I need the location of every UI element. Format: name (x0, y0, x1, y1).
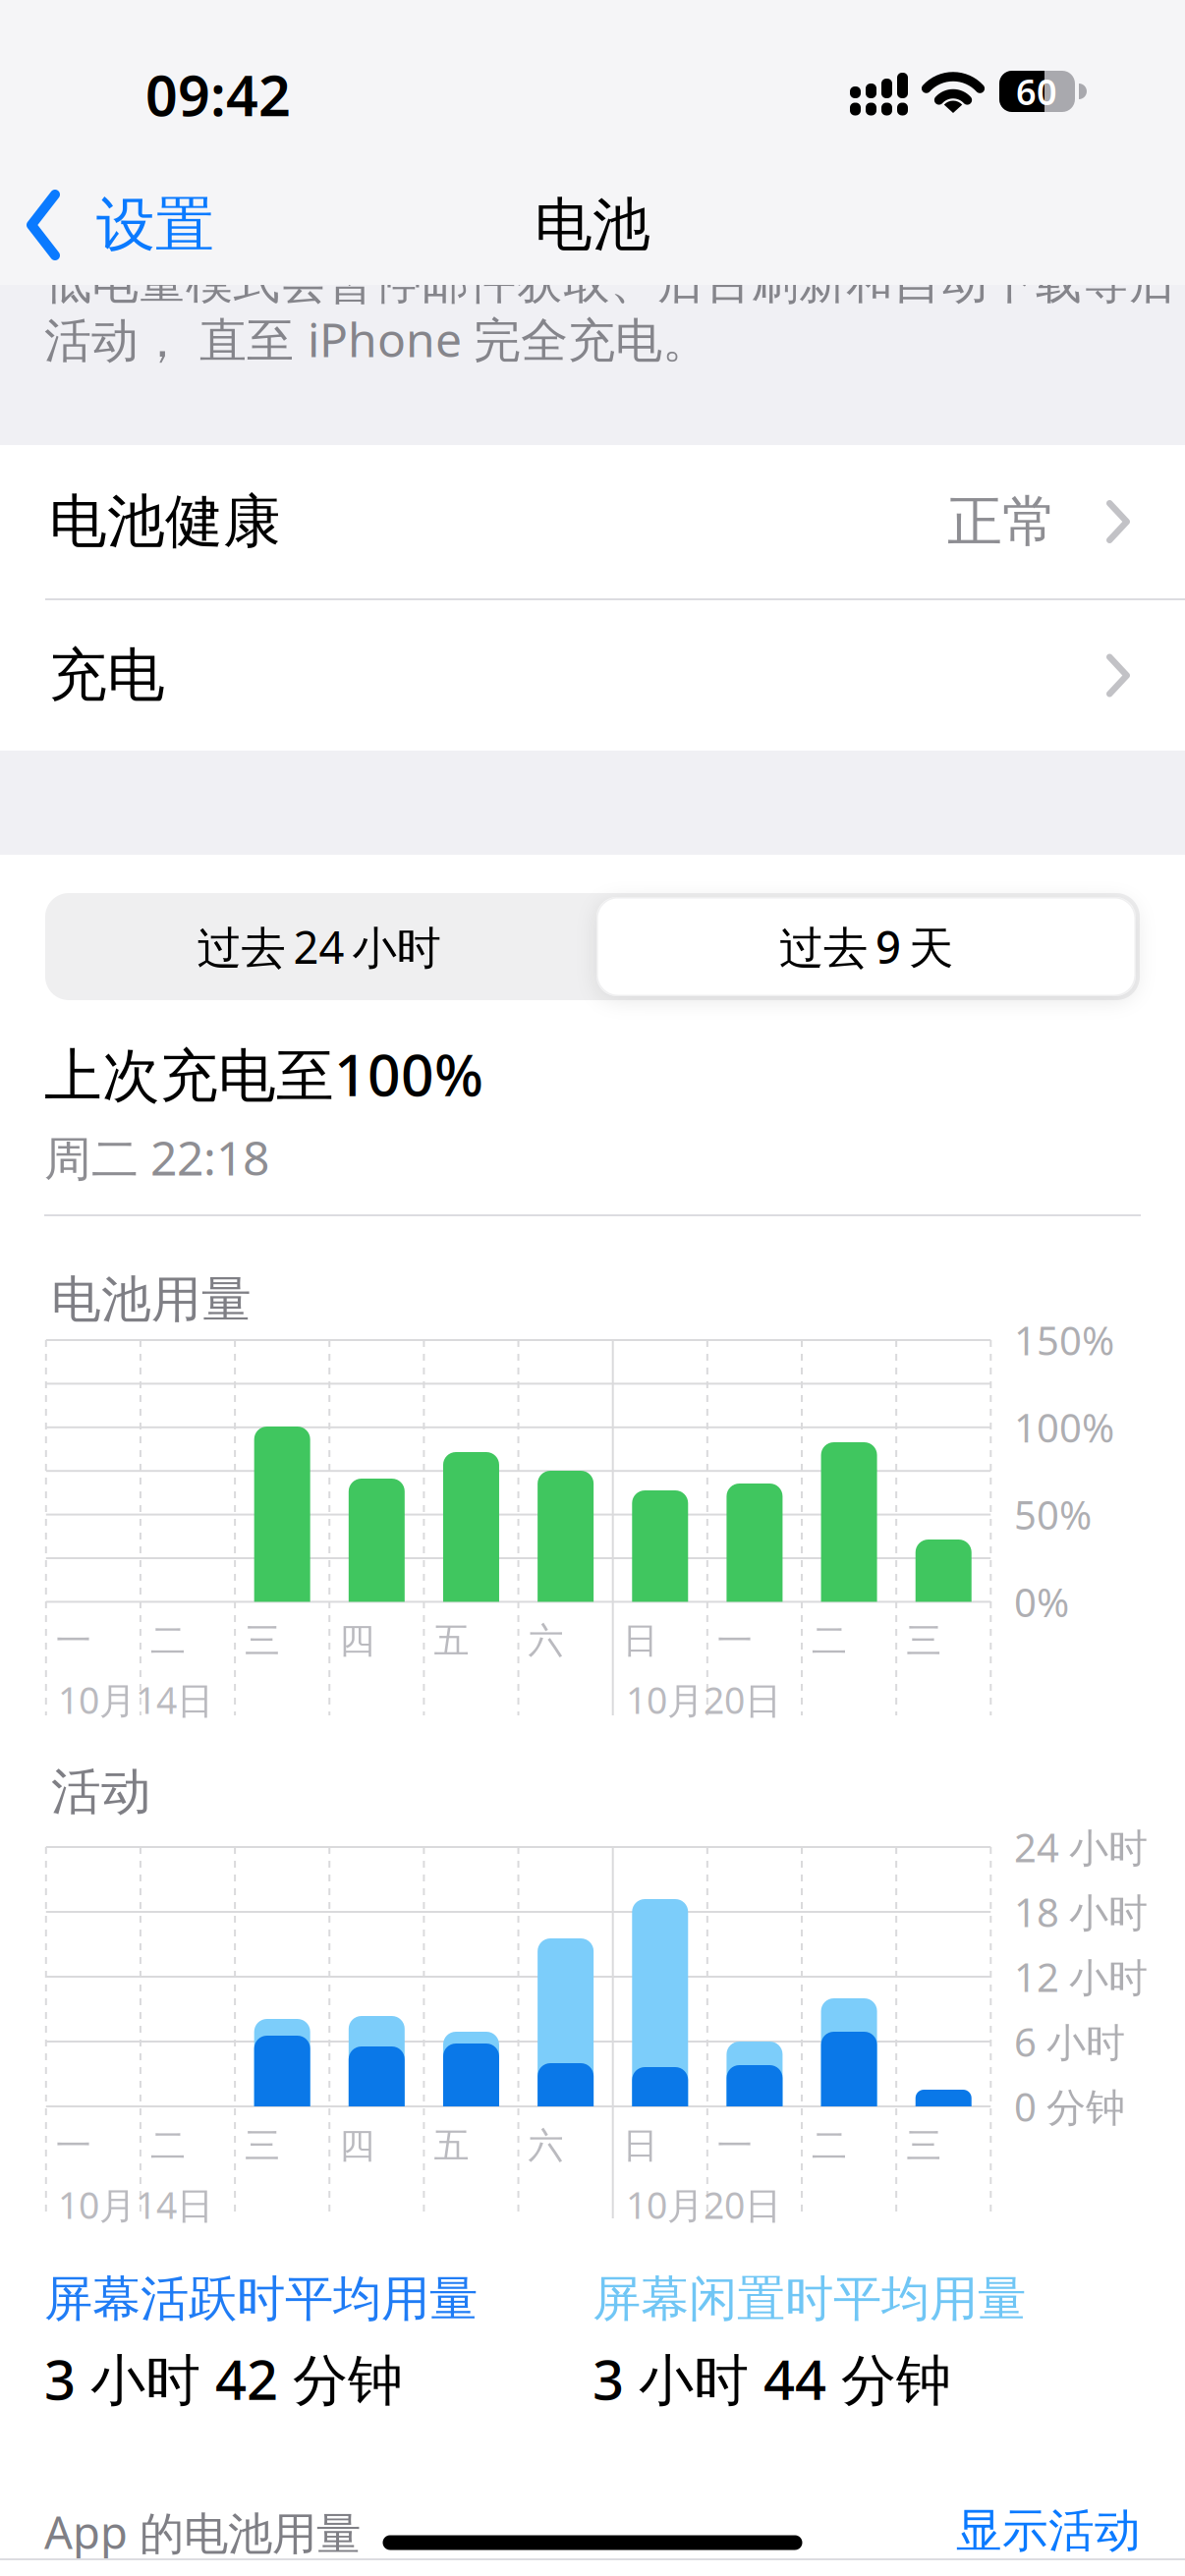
staticText: 100% (1014, 1401, 1114, 1453)
staticText: 三 (245, 1619, 280, 1662)
staticText: 6 小时 (1014, 2015, 1125, 2068)
staticText: 3 小时 44 分钟 (592, 2342, 951, 2415)
staticText: 12 小时 (1014, 1951, 1148, 2003)
staticText: 电池 (535, 190, 650, 260)
staticText: 09:42 (145, 57, 291, 132)
staticText: 日 (623, 1619, 658, 1662)
button[interactable]: 充电 (0, 600, 1185, 751)
staticText: 一 (56, 1619, 91, 1662)
staticText: 50% (1014, 1488, 1092, 1541)
staticText: 18 小时 (1014, 1886, 1148, 1938)
staticText: 一 (56, 2124, 91, 2167)
staticText: 电池用量 (51, 1269, 252, 1330)
staticText: 二 (812, 2124, 847, 2167)
staticText: 电池健康 (49, 486, 281, 557)
staticText: 充电 (49, 640, 165, 711)
staticText: 四 (339, 1619, 375, 1662)
staticText: 二 (812, 1619, 847, 1662)
staticText: 日 (623, 2124, 658, 2167)
staticText: 屏幕活跃时平均用量 (44, 2269, 478, 2329)
button[interactable]: 显示活动 (905, 2492, 1141, 2570)
button[interactable]: 电池健康 (0, 445, 1185, 598)
staticText: 3 小时 42 分钟 (44, 2342, 403, 2415)
staticText: 150% (1014, 1314, 1114, 1366)
staticText: 0 分钟 (1014, 2080, 1125, 2132)
staticText: 10月20日 (626, 2180, 781, 2229)
staticText: 60 (1016, 68, 1057, 115)
staticText: 六 (528, 1619, 564, 1662)
staticText: 周二 22:18 (44, 1126, 269, 1189)
staticText: 二 (150, 2124, 186, 2167)
staticText: 五 (434, 1619, 469, 1662)
staticText: 屏幕闲置时平均用量 (592, 2269, 1026, 2329)
staticText: 显示活动 (956, 2503, 1141, 2559)
staticText: 10月20日 (626, 1675, 781, 1724)
staticText: 0% (1014, 1576, 1069, 1628)
button[interactable]: 设置 (27, 166, 361, 284)
staticText: 上次充电至100% (44, 1036, 483, 1112)
staticText: 过去 24 小时 (197, 917, 441, 976)
staticText: 二 (150, 1619, 186, 1662)
staticText: 正常 (947, 488, 1057, 555)
button[interactable]: 过去 24 小时 (45, 893, 592, 1000)
staticText: 三 (245, 2124, 280, 2167)
staticText: 四 (339, 2124, 375, 2167)
staticText: 10月14日 (58, 1675, 213, 1724)
staticText: 过去 9 天 (779, 917, 953, 976)
staticText: 五 (434, 2124, 469, 2167)
staticText: 24 小时 (1014, 1821, 1148, 1873)
staticText: 一 (717, 2124, 753, 2167)
staticText: 三 (906, 2124, 941, 2167)
staticText: 设置 (96, 189, 214, 261)
staticText: 六 (528, 2124, 564, 2167)
staticText: 低电量模式会暂停邮件获取、后台刷新和自动下载等后 (44, 253, 1176, 311)
staticText: 活动， 直至 iPhone 完全充电。 (44, 308, 709, 370)
staticText: 三 (906, 1619, 941, 1662)
staticText: 活动 (51, 1761, 151, 1823)
button[interactable]: 过去 9 天 (592, 893, 1140, 1000)
staticText: App 的电池用量 (44, 2502, 361, 2561)
staticText: 10月14日 (58, 2180, 213, 2229)
staticText: 一 (717, 1619, 753, 1662)
